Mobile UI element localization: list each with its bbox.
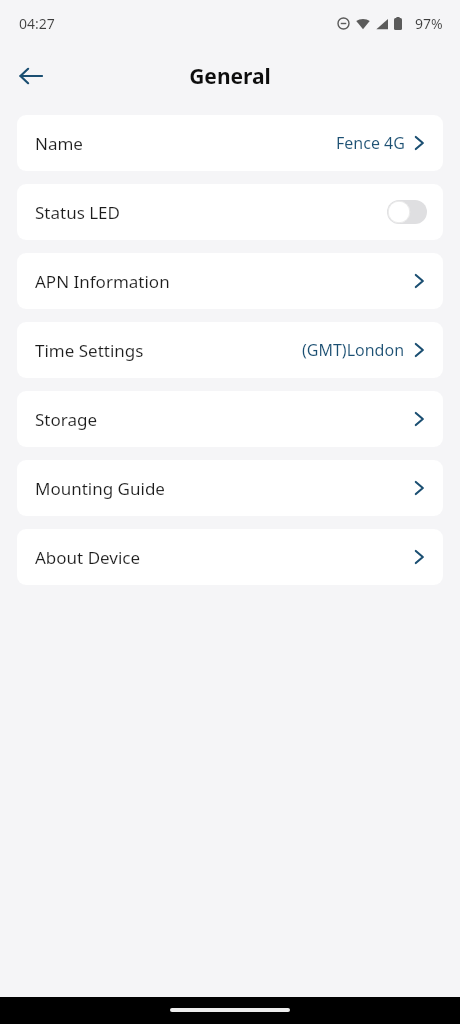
staticText: Name [35, 132, 83, 155]
button[interactable]: Status LED [17, 184, 443, 240]
staticText: Mounting Guide [35, 477, 165, 500]
button[interactable]: APN Information [17, 253, 443, 309]
button[interactable]: Status LED toggle [387, 200, 427, 224]
staticText: APN Information [35, 270, 170, 293]
staticText: 04:27 [19, 14, 55, 33]
button[interactable]: Mounting Guide [17, 460, 443, 516]
staticText: Fence 4G [336, 132, 405, 154]
button[interactable]: About Device [17, 529, 443, 585]
staticText: Storage [35, 408, 98, 431]
button[interactable]: Storage [17, 391, 443, 447]
staticText: About Device [35, 546, 141, 569]
staticText: (GMT)London [302, 339, 405, 361]
button[interactable]: Time Settings [17, 322, 443, 378]
staticText: Status LED [35, 201, 120, 224]
staticText: 97% [415, 14, 443, 33]
button[interactable]: Name [17, 115, 443, 171]
staticText: General [189, 62, 271, 91]
staticText: Time Settings [35, 339, 144, 362]
button[interactable]: Back [9, 54, 53, 98]
